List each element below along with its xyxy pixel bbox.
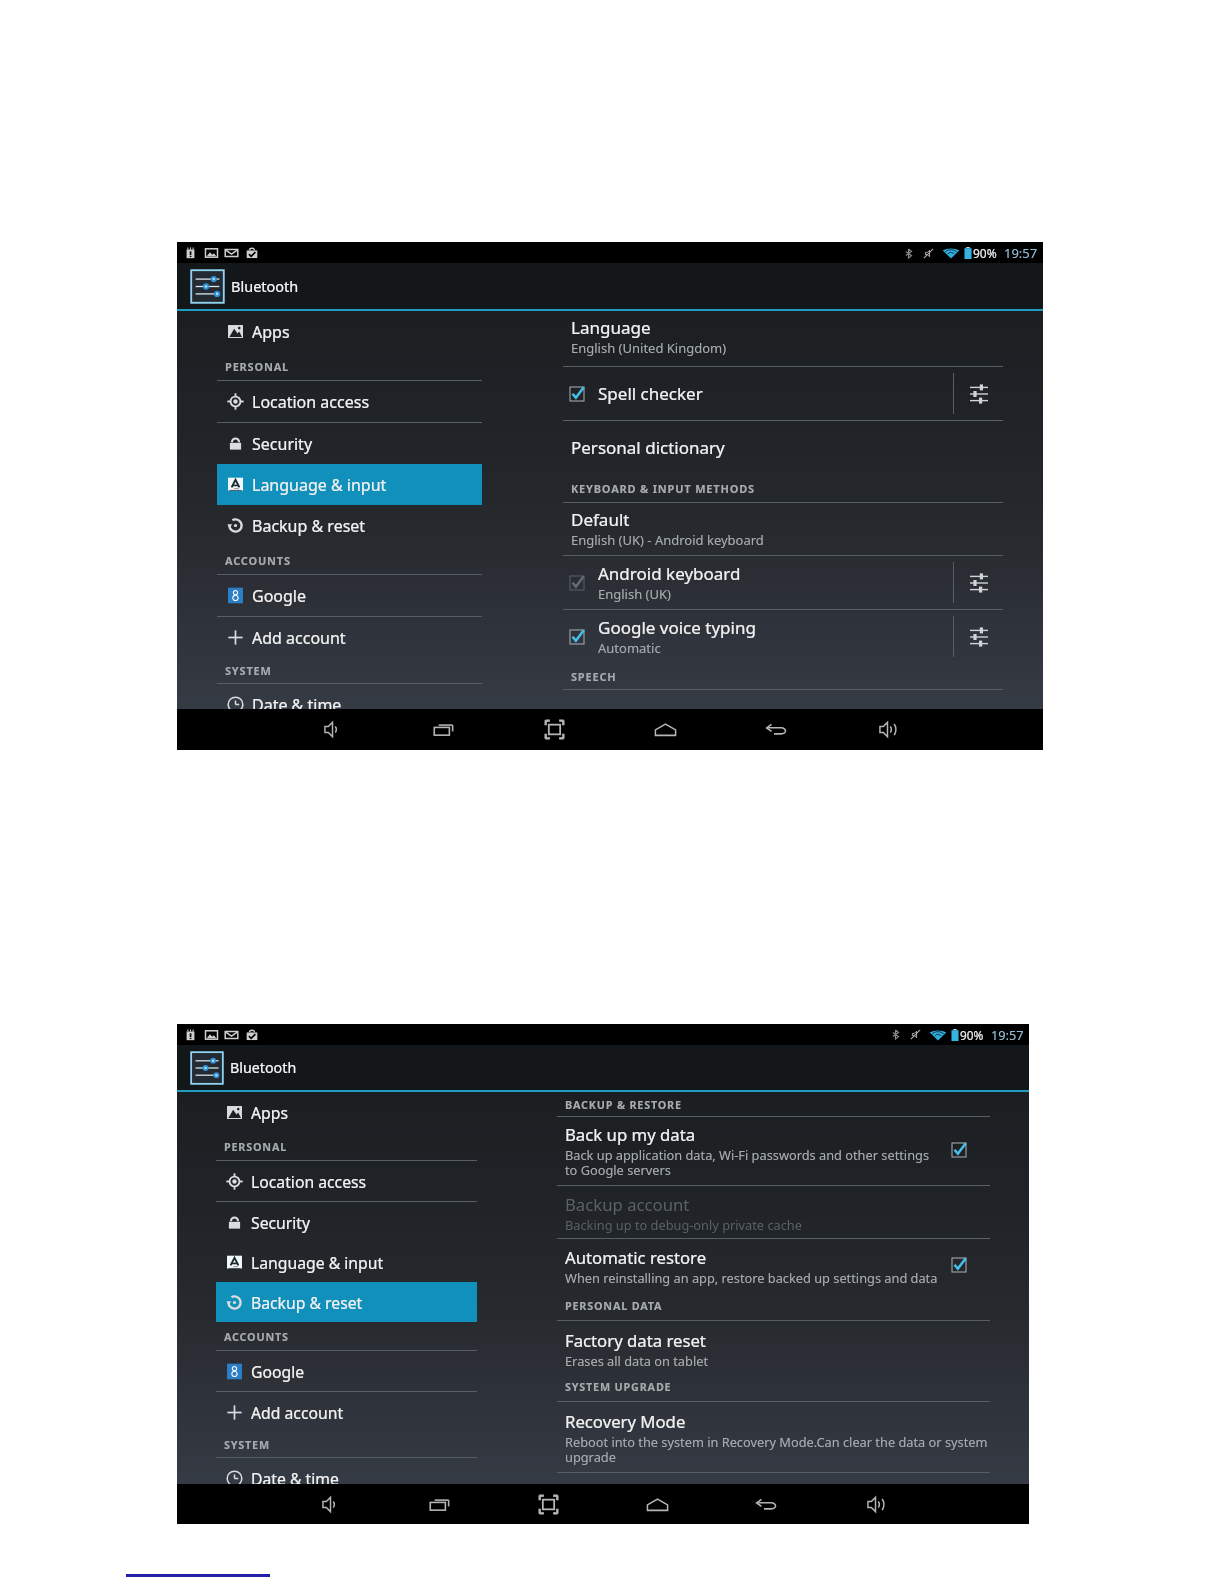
staticText: 19:57 (1004, 244, 1038, 262)
button[interactable]: Security (216, 1202, 477, 1242)
staticText: Reboot into the system in Recovery Mode.… (565, 1433, 988, 1466)
staticText: Backup account (565, 1193, 690, 1216)
button[interactable]: Language (563, 311, 1003, 366)
staticText: Location access (252, 391, 370, 413)
staticText: 90% (960, 1027, 984, 1043)
staticText: Backing up to debug-only private cache (565, 1216, 802, 1233)
staticText: Apps (252, 321, 290, 343)
staticText: Date & time (251, 1468, 339, 1484)
staticText: English (UK) (598, 585, 671, 603)
staticText: Language (571, 316, 651, 339)
staticText: Automatic (598, 639, 661, 657)
button[interactable]: Date & time (216, 1458, 477, 1484)
button[interactable]: Automatic restore (557, 1239, 990, 1291)
button[interactable]: Backup account (557, 1186, 990, 1238)
button[interactable]: Factory data reset (557, 1321, 990, 1372)
button[interactable]: Recent apps (385, 1484, 494, 1524)
button[interactable]: Volume up (832, 709, 943, 750)
button[interactable]: Settings (189, 1050, 225, 1086)
staticText: ACCOUNTS (224, 1329, 289, 1344)
staticText: Security (251, 1212, 311, 1233)
staticText: SYSTEM UPGRADE (565, 1379, 672, 1394)
staticText: Add account (252, 627, 346, 649)
button[interactable]: Volume down (277, 709, 388, 750)
staticText: Apps (251, 1102, 288, 1123)
button[interactable]: Location access (217, 381, 482, 422)
button[interactable]: Back (712, 1484, 821, 1524)
staticText: Default (571, 508, 630, 531)
button[interactable]: Back (721, 709, 832, 750)
staticText: Add account (251, 1402, 344, 1423)
button[interactable]: Language & input (216, 1242, 477, 1282)
button[interactable]: Volume down (276, 1484, 385, 1524)
button[interactable]: Apps (216, 1092, 477, 1132)
staticText: English (United Kingdom) (571, 339, 727, 357)
staticText: Factory data reset (565, 1329, 706, 1352)
staticText: Language & input (252, 474, 387, 496)
button[interactable]: Settings (954, 367, 1003, 420)
button[interactable]: Spell checker (563, 367, 1003, 420)
staticText: Backup & reset (251, 1292, 363, 1313)
button[interactable]: Home (610, 709, 721, 750)
staticText: Language & input (251, 1252, 384, 1273)
button[interactable]: Settings (189, 268, 226, 305)
staticText: Google (251, 1361, 305, 1382)
button[interactable]: Add account (217, 617, 482, 658)
button[interactable]: Screenshot (499, 709, 610, 750)
staticText: ACCOUNTS (225, 553, 291, 568)
staticText: BACKUP & RESTORE (565, 1097, 682, 1112)
button[interactable]: Recovery Mode (557, 1402, 990, 1472)
button[interactable]: Volume up (821, 1484, 930, 1524)
button[interactable]: Location access (216, 1161, 477, 1201)
staticText: PERSONAL (224, 1139, 288, 1154)
staticText: Backup & reset (252, 515, 366, 537)
button[interactable]: Android keyboard (563, 556, 1003, 609)
staticText: SPEECH (571, 669, 617, 684)
staticText: 19:57 (991, 1026, 1024, 1043)
button[interactable]: Language & input (217, 464, 482, 505)
button[interactable]: Apps (217, 311, 482, 352)
button[interactable]: Home (603, 1484, 712, 1524)
button[interactable]: Add account (216, 1392, 477, 1432)
staticText: Bluetooth (231, 276, 299, 296)
staticText: Back up application data, Wi-Fi password… (565, 1146, 930, 1179)
button[interactable]: Default (563, 503, 1003, 555)
button[interactable]: Google (216, 1351, 477, 1391)
staticText: Location access (251, 1171, 367, 1192)
staticText: Security (252, 433, 313, 455)
staticText: Bluetooth (230, 1058, 297, 1077)
staticText: Back up my data (565, 1123, 696, 1146)
button[interactable]: Backup & reset (216, 1282, 477, 1322)
staticText: Google voice typing (598, 616, 756, 639)
button[interactable]: Backup & reset (217, 505, 482, 546)
staticText: KEYBOARD & INPUT METHODS (571, 481, 755, 496)
staticText: Android keyboard (598, 562, 741, 585)
staticText: Erases all data on tablet (565, 1352, 709, 1369)
button[interactable]: Back up my data (557, 1117, 990, 1185)
staticText: Spell checker (598, 382, 703, 405)
staticText: When reinstalling an app, restore backed… (565, 1269, 938, 1286)
staticText: SYSTEM (224, 1437, 270, 1452)
button[interactable]: Recent apps (388, 709, 499, 750)
staticText: Google (252, 585, 307, 607)
staticText: 90% (973, 245, 997, 261)
staticText: PERSONAL DATA (565, 1298, 663, 1313)
staticText: PERSONAL (225, 359, 290, 374)
button[interactable]: Settings (954, 610, 1003, 663)
button[interactable]: Google voice typing (563, 610, 1003, 663)
staticText: Automatic restore (565, 1246, 707, 1269)
button[interactable]: Screenshot (494, 1484, 603, 1524)
button[interactable]: Google (217, 575, 482, 616)
button[interactable]: Personal dictionary (563, 421, 1003, 474)
staticText: English (UK) - Android keyboard (571, 531, 764, 549)
staticText: Date & time (252, 694, 342, 709)
staticText: Recovery Mode (565, 1410, 686, 1433)
staticText: SYSTEM (225, 663, 272, 678)
button[interactable]: Settings (954, 556, 1003, 609)
button[interactable]: Date & time (217, 684, 482, 709)
staticText: Personal dictionary (571, 436, 725, 459)
button[interactable]: Security (217, 423, 482, 464)
